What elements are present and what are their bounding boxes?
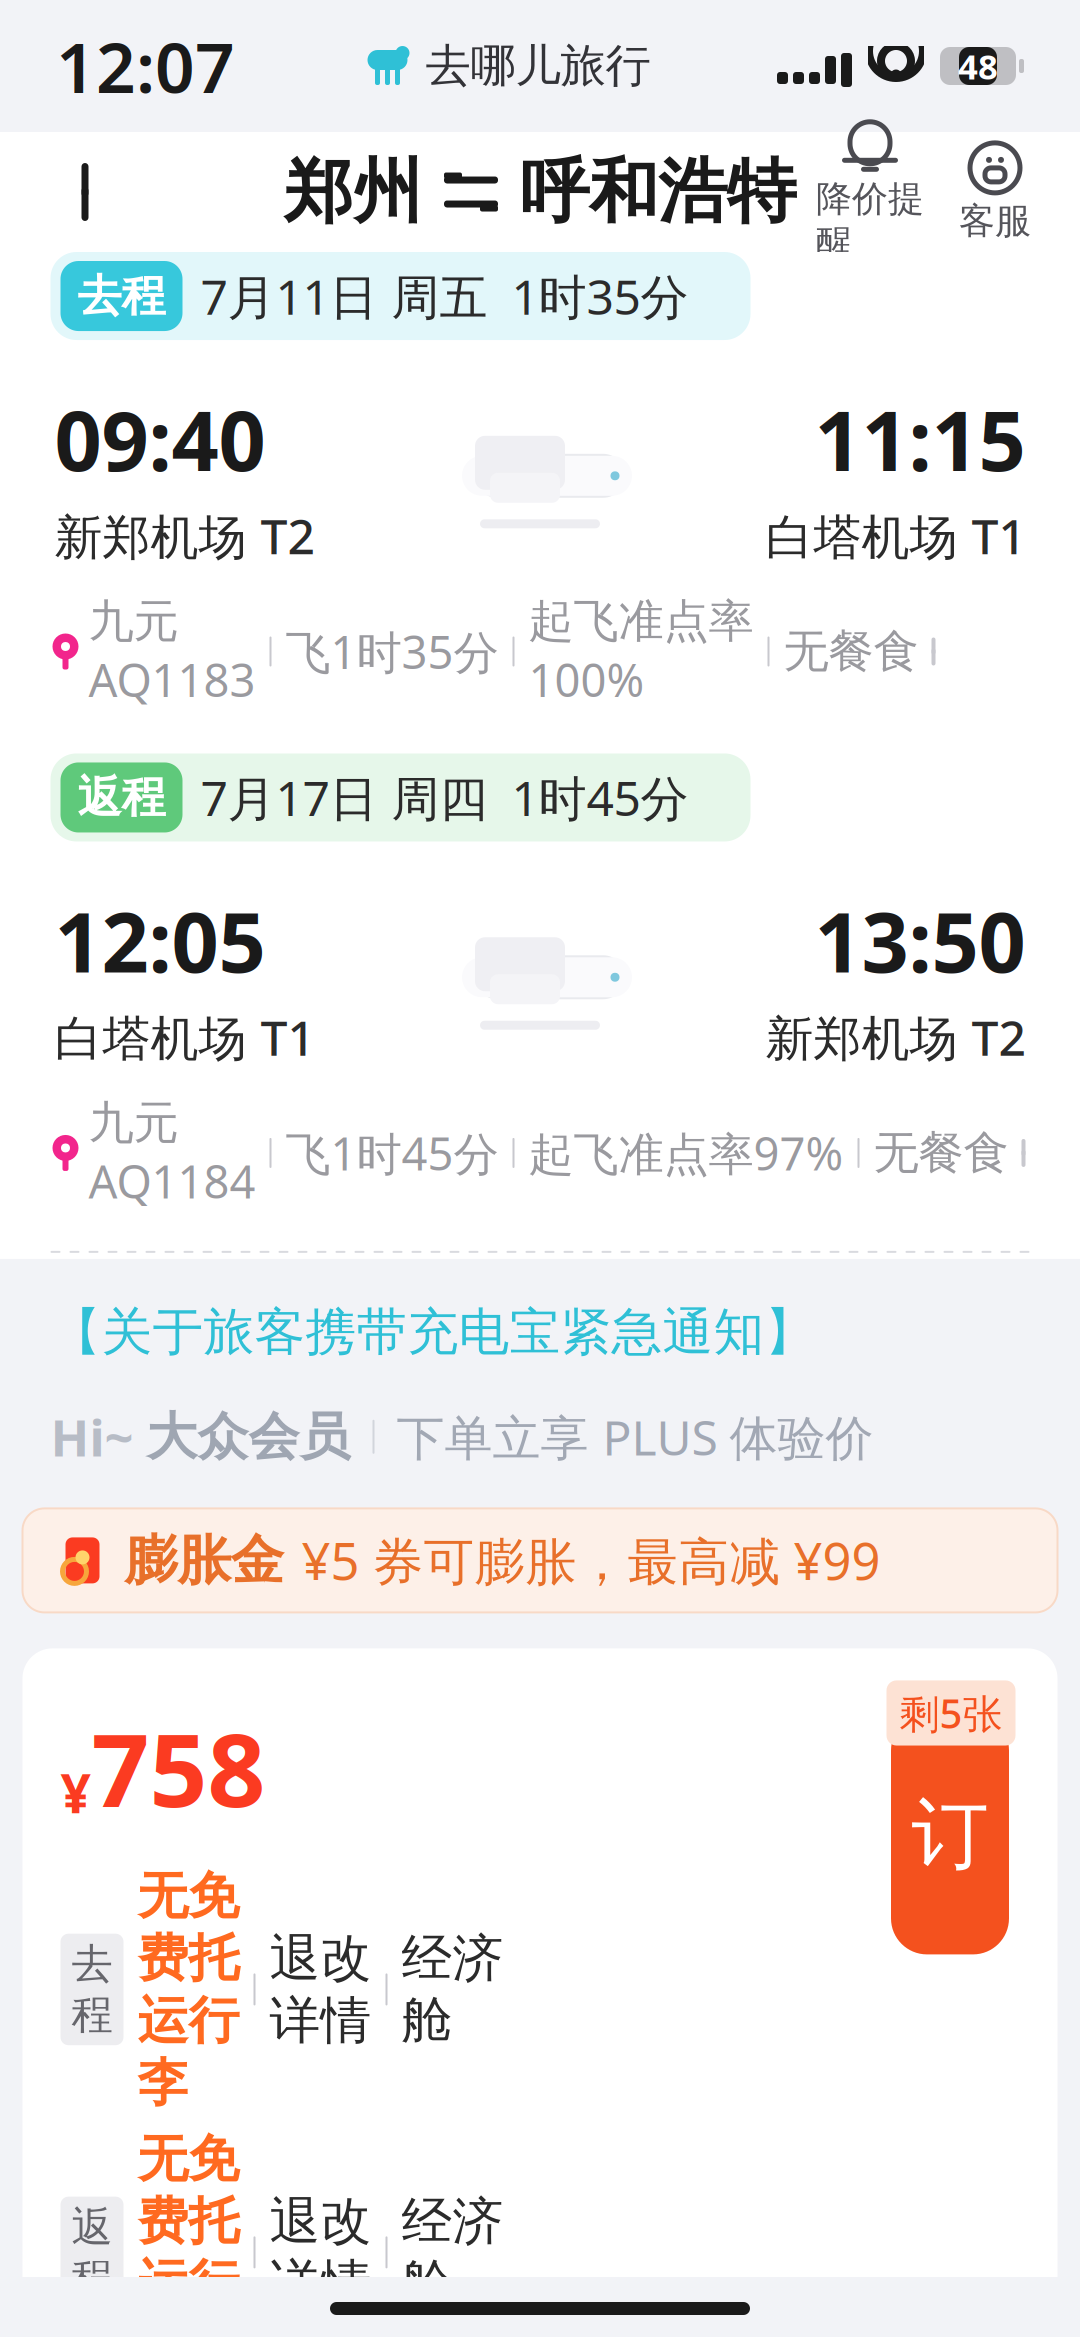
staticText: 飞1时45分 (285, 1123, 498, 1183)
staticText: ¥ (60, 1757, 91, 1828)
staticText: 无免费托运行李 (137, 2128, 239, 2337)
staticText: 返程 (71, 2202, 112, 2303)
staticText: 退改详情 (269, 1927, 371, 2052)
button[interactable]: 九元AQ1183 (0, 568, 1080, 709)
staticText: 飞1时35分 (285, 621, 498, 682)
staticText: 12:07 (56, 20, 235, 112)
staticText: 客服 (959, 199, 1031, 243)
staticText: 无餐食 (783, 624, 918, 679)
staticText: 无免费托运行李 (137, 1865, 239, 2114)
staticText: 退改详情 (269, 2190, 371, 2315)
staticText: 呼和浩特 (520, 149, 796, 235)
staticText: 大众会员 (146, 1406, 350, 1468)
staticText: 郑州 (284, 149, 422, 235)
button[interactable]: 返回 (30, 137, 140, 247)
staticText: 新郑机场 T2 (54, 504, 314, 567)
staticText: 去程 (77, 269, 165, 323)
staticText: 订 (911, 1787, 988, 1882)
staticText: 7月11日 周五 1时35分 (200, 264, 688, 328)
button[interactable]: 客服 (940, 137, 1050, 247)
staticText: 09:40 (54, 384, 265, 494)
staticText: 经济舱 (401, 2190, 503, 2315)
staticText: 经济舱 (401, 1927, 503, 2052)
button[interactable]: 降价提醒 (800, 137, 940, 247)
button[interactable]: 退改详情 (269, 1927, 371, 2052)
staticText: 降价提醒 (816, 177, 924, 265)
staticText: 返程 (77, 770, 165, 824)
staticText: 无餐食 (873, 1125, 1008, 1181)
staticText: 11:15 (814, 384, 1025, 494)
staticText: 13:50 (814, 885, 1025, 995)
staticText: 起飞准点率100% (528, 594, 753, 709)
staticText: 12:05 (54, 885, 265, 995)
staticText: 758 (91, 1700, 265, 1835)
staticText: 白塔机场 T1 (765, 504, 1025, 567)
staticText: 九元AQ1184 (88, 1095, 255, 1211)
staticText: 去哪儿旅行 (425, 38, 650, 94)
staticText: 新郑机场 T2 (765, 1005, 1025, 1069)
button[interactable]: 【关于旅客携带充电宝紧急通知】 (0, 1259, 1080, 1363)
staticText: 去程 (71, 1939, 112, 2040)
staticText: 48 (958, 43, 998, 89)
staticText: 剩5张 (899, 1686, 1002, 1739)
button[interactable]: 膨胀金 (0, 1470, 1080, 1612)
staticText: 白塔机场 T1 (54, 1005, 314, 1069)
staticText: 膨胀金 (124, 1528, 283, 1593)
staticText: Hi~ (50, 1403, 146, 1470)
staticText: 下单立享 PLUS 体验价 (396, 1405, 873, 1469)
button[interactable]: 九元AQ1184 (0, 1069, 1080, 1211)
staticText: 九元AQ1183 (88, 594, 255, 709)
button[interactable]: 退改详情 (269, 2190, 371, 2315)
button[interactable]: 订 (891, 1714, 1009, 1954)
staticText: ¥5 券可膨胀，最高减 ¥99 (301, 1527, 880, 1594)
button[interactable]: Hi~ (0, 1363, 1080, 1470)
staticText: 7月17日 周四 1时45分 (200, 766, 688, 829)
staticText: 【关于旅客携带充电宝紧急通知】 (50, 1301, 815, 1363)
staticText: 起飞准点率97% (528, 1123, 843, 1183)
